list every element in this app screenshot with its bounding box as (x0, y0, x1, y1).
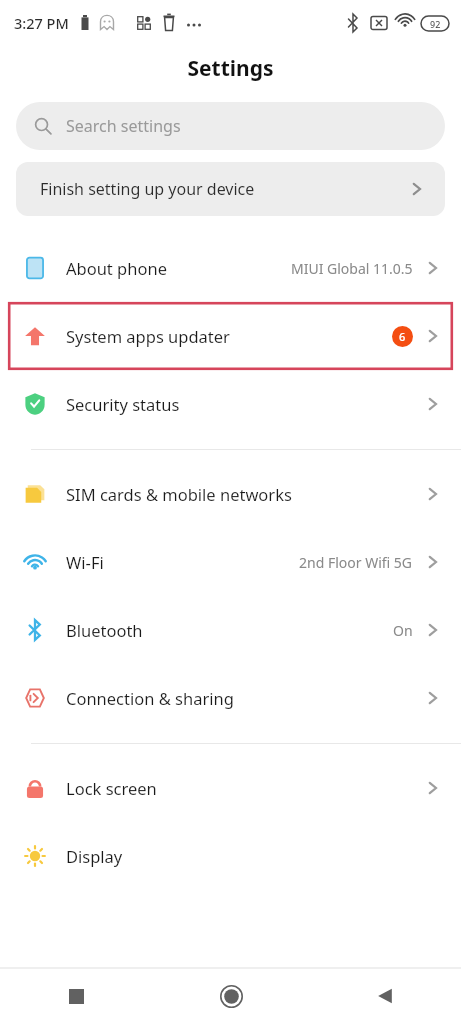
button[interactable]: Wi-Fi (0, 528, 461, 596)
button[interactable]: Finish setting up your device (16, 162, 445, 216)
staticText: Finish setting up your device (40, 178, 255, 200)
staticText: SIM cards & mobile networks (66, 483, 292, 505)
button[interactable]: Back (363, 974, 407, 1018)
button[interactable]: Recent apps (54, 974, 98, 1018)
staticText: System apps updater (66, 325, 230, 347)
button[interactable]: Display (0, 822, 461, 890)
staticText: 3:27 PM (14, 13, 69, 33)
staticText: Display (66, 845, 123, 867)
button[interactable]: Security status (0, 370, 461, 438)
staticText: 6 (399, 329, 406, 344)
button[interactable]: Lock screen (0, 754, 461, 822)
button[interactable]: Home (209, 974, 253, 1018)
staticText: On (393, 621, 413, 640)
staticText: MIUI Global 11.0.5 (291, 259, 413, 278)
button[interactable]: Bluetooth (0, 596, 461, 664)
staticText: Search settings (66, 115, 181, 137)
button[interactable]: Search settings (16, 102, 445, 150)
staticText: 92 (430, 18, 441, 30)
staticText: Lock screen (66, 777, 157, 799)
staticText: Settings (187, 54, 274, 83)
staticText: 2nd Floor Wifi 5G (299, 553, 413, 572)
staticText: Security status (66, 393, 180, 415)
staticText: Bluetooth (66, 619, 143, 641)
staticText: Wi-Fi (66, 551, 104, 573)
button[interactable]: Connection & sharing (0, 664, 461, 732)
staticText: Connection & sharing (66, 687, 234, 709)
button[interactable]: About phone (0, 234, 461, 302)
staticText: About phone (66, 257, 167, 279)
button[interactable]: System apps updater (0, 302, 461, 370)
button[interactable]: SIM cards & mobile networks (0, 460, 461, 528)
